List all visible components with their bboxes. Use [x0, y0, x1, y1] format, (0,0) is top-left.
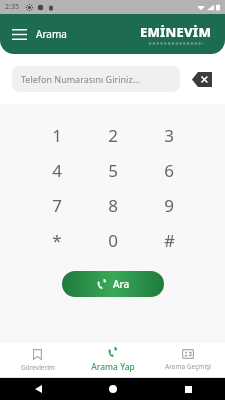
staticText: Görevlerim [21, 363, 55, 372]
button[interactable]: 5 [85, 153, 141, 188]
staticText: 1 [52, 124, 62, 147]
button[interactable]: 2 [85, 118, 141, 153]
staticText: 3 [164, 124, 174, 147]
staticText: 2 [108, 124, 118, 147]
staticText: * [52, 229, 62, 252]
staticText: # [164, 229, 175, 252]
button[interactable]: 4 [28, 153, 85, 188]
staticText: Arama [36, 27, 67, 41]
staticText: 0 [108, 229, 118, 252]
button[interactable]: Görevlerim [0, 343, 75, 377]
button[interactable]: Arama Geçmişi [150, 343, 225, 377]
button[interactable]: 8 [85, 188, 141, 223]
staticText: 9 [164, 194, 174, 217]
button[interactable]: Ara [62, 271, 164, 297]
button[interactable]: Menu [7, 22, 31, 46]
button[interactable]: Arama Yap [75, 343, 150, 377]
staticText: Arama Yap [91, 361, 135, 373]
button[interactable]: 7 [28, 188, 85, 223]
button[interactable]: Recent apps [177, 378, 199, 400]
button[interactable]: # [141, 223, 197, 258]
staticText: Ara [113, 277, 130, 291]
staticText: 6 [164, 159, 174, 182]
button[interactable]: * [28, 223, 85, 258]
staticText: 5 [108, 159, 118, 182]
staticText: EMİNEVİM [140, 23, 211, 41]
button[interactable]: 9 [141, 188, 197, 223]
button[interactable]: Home [102, 378, 124, 400]
button[interactable]: Backspace [191, 68, 213, 90]
button[interactable]: 0 [85, 223, 141, 258]
staticText: 7 [52, 194, 62, 217]
staticText: 4 [52, 159, 62, 182]
staticText: Arama Geçmişi [165, 362, 211, 371]
button[interactable]: Telefon Numarasını Giriniz... [12, 66, 180, 92]
button[interactable]: Back [27, 378, 49, 400]
button[interactable]: 1 [28, 118, 85, 153]
staticText: 8 [108, 194, 118, 217]
staticText: 2:35 [5, 2, 19, 12]
button[interactable]: 3 [141, 118, 197, 153]
staticText: Telefon Numarasını Giriniz... [21, 73, 140, 85]
button[interactable]: 6 [141, 153, 197, 188]
